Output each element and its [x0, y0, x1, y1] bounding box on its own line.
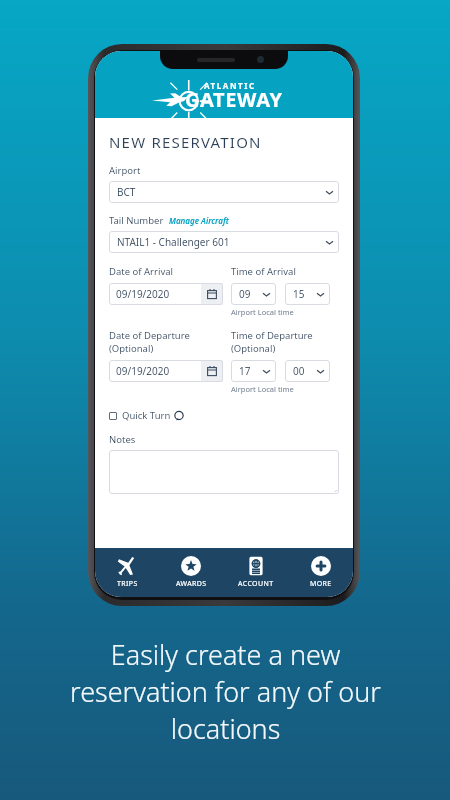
- staticText: 09/19/2020: [116, 287, 201, 301]
- button[interactable]: Account: [223, 548, 288, 597]
- staticText: Time of Departure: [231, 329, 313, 342]
- staticText: 09/19/2020: [116, 364, 201, 378]
- staticText: BCT: [117, 185, 136, 199]
- staticText: Airport Local time: [231, 307, 294, 317]
- staticText: Airport: [109, 164, 141, 177]
- button[interactable]: NTAIL1 - Challenger 601: [109, 231, 339, 253]
- staticText: Notes: [109, 433, 136, 446]
- button[interactable]: 09/19/2020: [109, 283, 223, 305]
- staticText: Airport Local time: [231, 384, 294, 394]
- button[interactable]: Awards: [159, 548, 223, 597]
- staticText: GATEWAY: [185, 86, 283, 113]
- button[interactable]: 00: [285, 360, 330, 382]
- staticText: (Optional): [231, 342, 276, 355]
- staticText: TRIPS: [117, 579, 138, 589]
- staticText: Quick Turn: [122, 409, 171, 422]
- button[interactable]: 17: [231, 360, 276, 382]
- staticText: Tail Number: [109, 214, 164, 227]
- button[interactable]: Manage Aircraft: [169, 215, 229, 227]
- staticText: Date of Departure: [109, 329, 190, 342]
- staticText: 09: [239, 287, 251, 301]
- other: Awards: [181, 556, 201, 576]
- staticText: Date of Arrival: [109, 265, 173, 278]
- button[interactable]: More: [288, 548, 353, 597]
- other: More: [311, 556, 331, 576]
- staticText: NEW RESERVATION: [109, 132, 262, 152]
- staticText: Easily create a new reservation for any …: [70, 636, 381, 747]
- other: Trips: [117, 556, 137, 576]
- staticText: MORE: [310, 579, 332, 589]
- staticText: ACCOUNT: [238, 579, 274, 589]
- button[interactable]: BCT: [109, 181, 339, 203]
- button[interactable]: [109, 450, 339, 494]
- button[interactable]: 09/19/2020: [109, 360, 223, 382]
- staticText: ATLANTIC: [204, 80, 256, 91]
- staticText: NTAIL1 - Challenger 601: [117, 235, 230, 249]
- staticText: Time of Arrival: [231, 265, 296, 278]
- button[interactable]: Quick Turn: [109, 407, 184, 424]
- staticText: 00: [293, 364, 305, 378]
- button[interactable]: Trips: [95, 548, 159, 597]
- button[interactable]: 09: [231, 283, 276, 305]
- other: Account: [246, 556, 266, 576]
- staticText: AWARDS: [176, 579, 207, 589]
- button[interactable]: 15: [285, 283, 330, 305]
- staticText: 17: [239, 364, 251, 378]
- staticText: (Optional): [109, 342, 154, 355]
- staticText: 15: [293, 287, 305, 301]
